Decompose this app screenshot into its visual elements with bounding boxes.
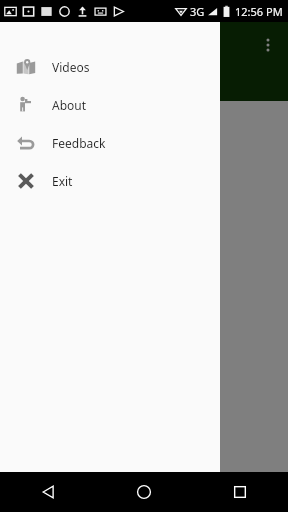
button[interactable]: Recents bbox=[192, 472, 288, 512]
staticText: About bbox=[52, 97, 87, 113]
staticText: Exit bbox=[52, 173, 73, 189]
button[interactable]: More options bbox=[248, 25, 288, 65]
button[interactable]: Home bbox=[96, 472, 192, 512]
staticText: 3G bbox=[190, 4, 205, 19]
button[interactable]: Back bbox=[0, 472, 96, 512]
staticText: 12:56 PM bbox=[235, 4, 283, 19]
button[interactable]: Videos bbox=[0, 48, 220, 86]
staticText: by Gujarat Tourism Principal bbox=[14, 185, 173, 201]
button[interactable]: Exit bbox=[0, 162, 220, 200]
staticText: Feedback bbox=[52, 135, 106, 151]
button[interactable]: About bbox=[0, 86, 220, 124]
staticText: Gujarat Tourism… bbox=[16, 35, 248, 55]
staticText: Videos bbox=[52, 59, 90, 75]
button[interactable]: Close navigation drawer bbox=[0, 22, 288, 472]
button[interactable]: Feedback bbox=[0, 124, 220, 162]
